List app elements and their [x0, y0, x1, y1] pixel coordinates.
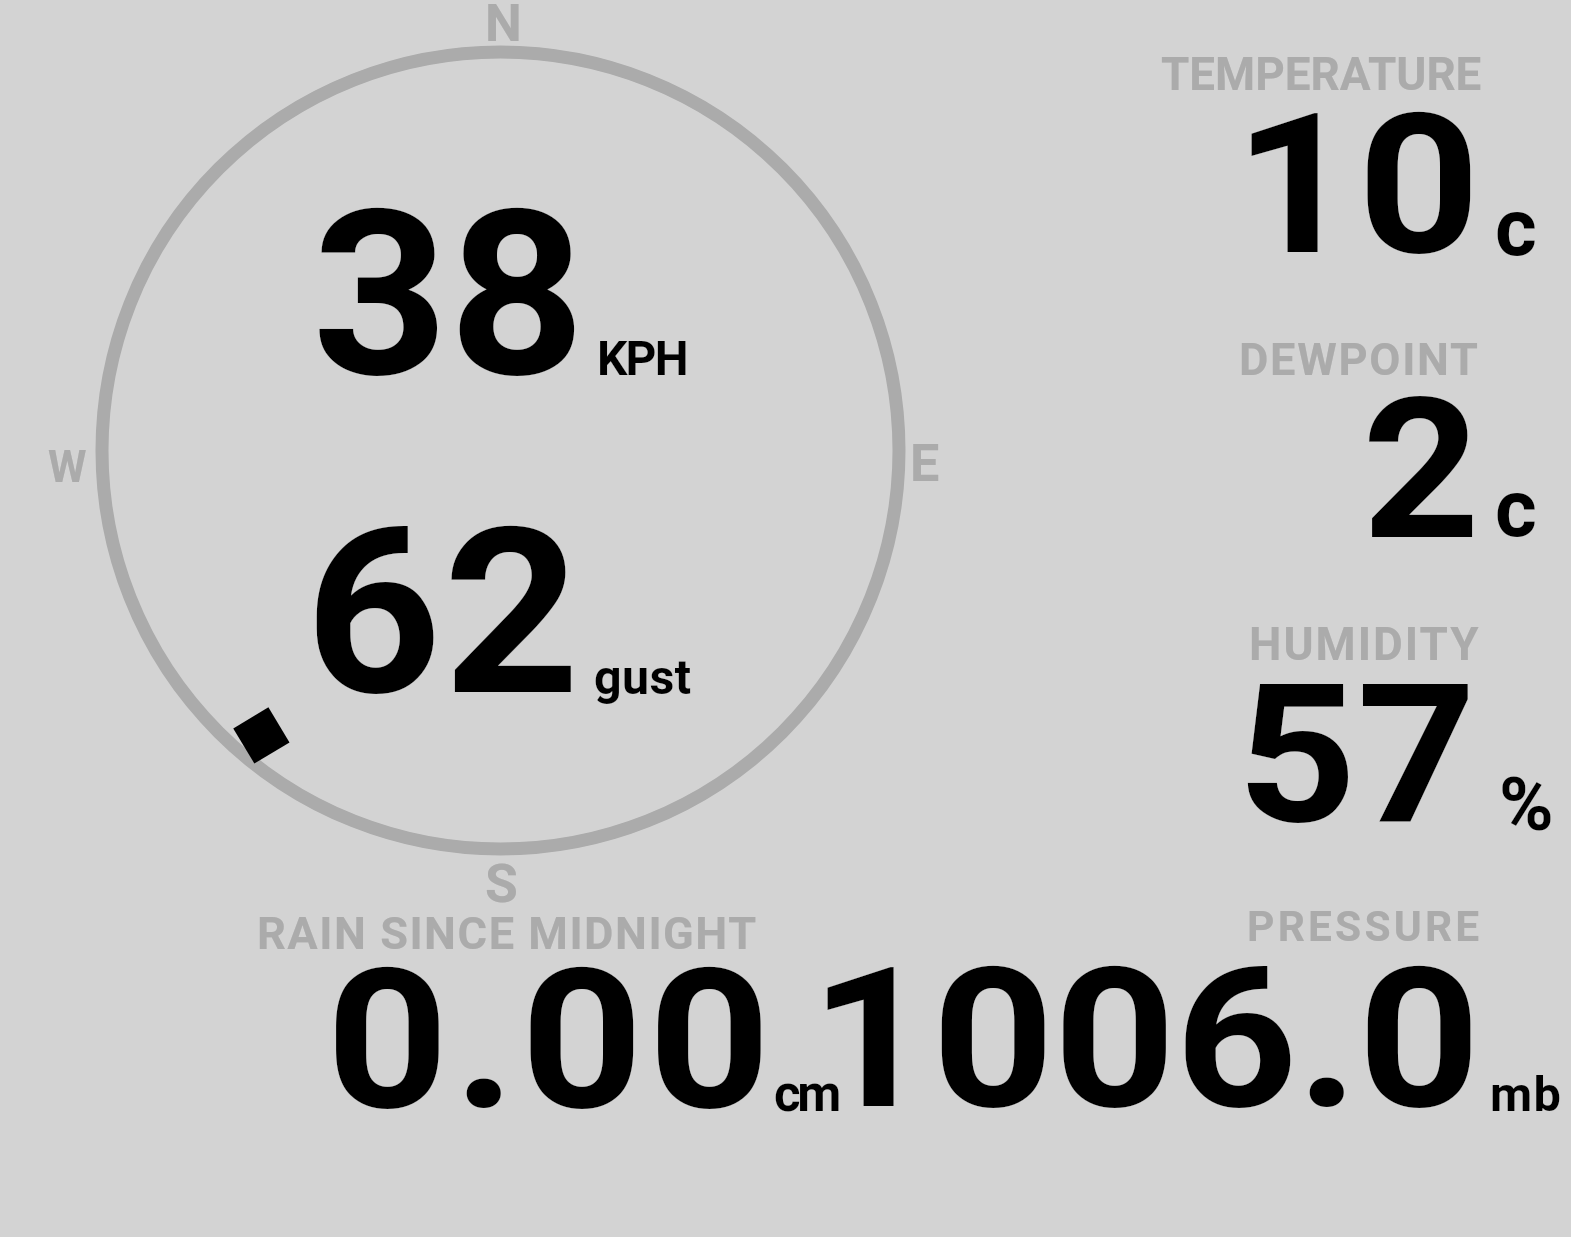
button[interactable]: Temperature 10 degrees Celsius	[1140, 40, 1571, 270]
staticText: %	[1499, 761, 1554, 848]
staticText: 62	[305, 479, 582, 749]
button[interactable]: Wind speed and direction compass	[80, 0, 960, 910]
staticText: S	[485, 852, 518, 915]
button[interactable]: Pressure 1006.0 millibars	[850, 895, 1571, 1120]
staticText: RAIN SINCE MIDNIGHT	[257, 907, 758, 960]
button[interactable]: Dewpoint 2 degrees Celsius	[1140, 325, 1571, 550]
staticText: cm	[774, 1064, 839, 1124]
staticText: 0.00	[326, 927, 776, 1155]
staticText: c	[1495, 462, 1537, 556]
staticText: KPH	[597, 331, 687, 387]
staticText: HUMIDITY	[1249, 618, 1481, 672]
staticText: PRESSURE	[1247, 902, 1483, 952]
staticText: E	[910, 433, 940, 494]
button[interactable]: Rain since midnight 0.00 centimetres	[240, 895, 850, 1120]
staticText: c	[1495, 181, 1537, 275]
staticText: mb	[1490, 1066, 1563, 1123]
staticText: 1006.0	[810, 926, 1480, 1154]
staticText: 38	[312, 161, 586, 431]
staticText: 2	[1362, 355, 1481, 584]
staticText: W	[48, 441, 87, 493]
staticText: N	[485, 0, 522, 54]
button[interactable]: Humidity 57 percent	[1140, 610, 1571, 835]
staticText: 57	[1237, 642, 1477, 868]
staticText: gust	[594, 649, 692, 706]
staticText: TEMPERATURE	[1161, 48, 1482, 102]
staticText: DEWPOINT	[1239, 333, 1480, 386]
staticText: 10	[1234, 72, 1481, 300]
